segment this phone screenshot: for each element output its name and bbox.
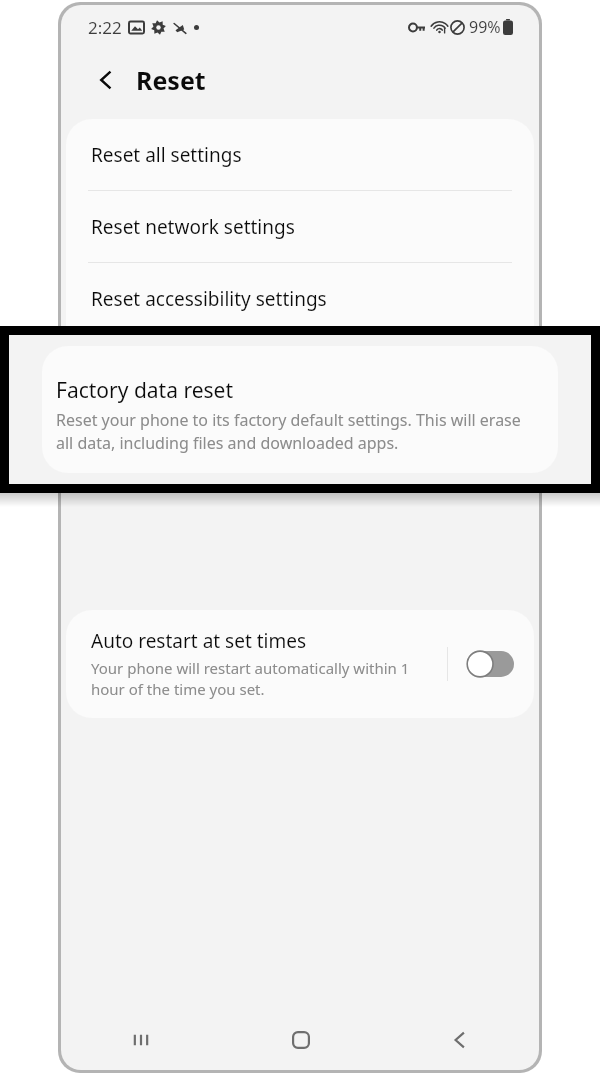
button[interactable]: Reset network settings bbox=[66, 191, 534, 262]
staticText: Your phone will restart automatically wi… bbox=[91, 658, 437, 700]
staticText: Factory data reset bbox=[56, 376, 233, 405]
staticText: Reset all settings bbox=[91, 142, 242, 168]
button[interactable]: Reset all settings bbox=[66, 119, 534, 190]
staticText: Reset network settings bbox=[91, 214, 295, 240]
button[interactable]: Reset accessibility settings bbox=[66, 263, 534, 334]
staticText: 99% bbox=[469, 16, 501, 38]
button[interactable]: Back bbox=[380, 1010, 539, 1070]
button[interactable]: Factory data reset bbox=[42, 346, 558, 473]
staticText: Auto restart at set times bbox=[91, 628, 307, 654]
staticText: Reset bbox=[136, 63, 206, 97]
staticText: Reset your phone to its factory default … bbox=[56, 409, 542, 454]
button[interactable]: Auto restart toggle bbox=[462, 649, 514, 679]
button[interactable]: Auto restart at set times bbox=[66, 610, 534, 718]
staticText: Reset accessibility settings bbox=[91, 286, 327, 312]
button[interactable]: Recents bbox=[61, 1010, 221, 1070]
staticText: 2:22 bbox=[88, 16, 122, 39]
button[interactable]: Back bbox=[88, 62, 124, 98]
button[interactable]: Home bbox=[221, 1010, 380, 1070]
